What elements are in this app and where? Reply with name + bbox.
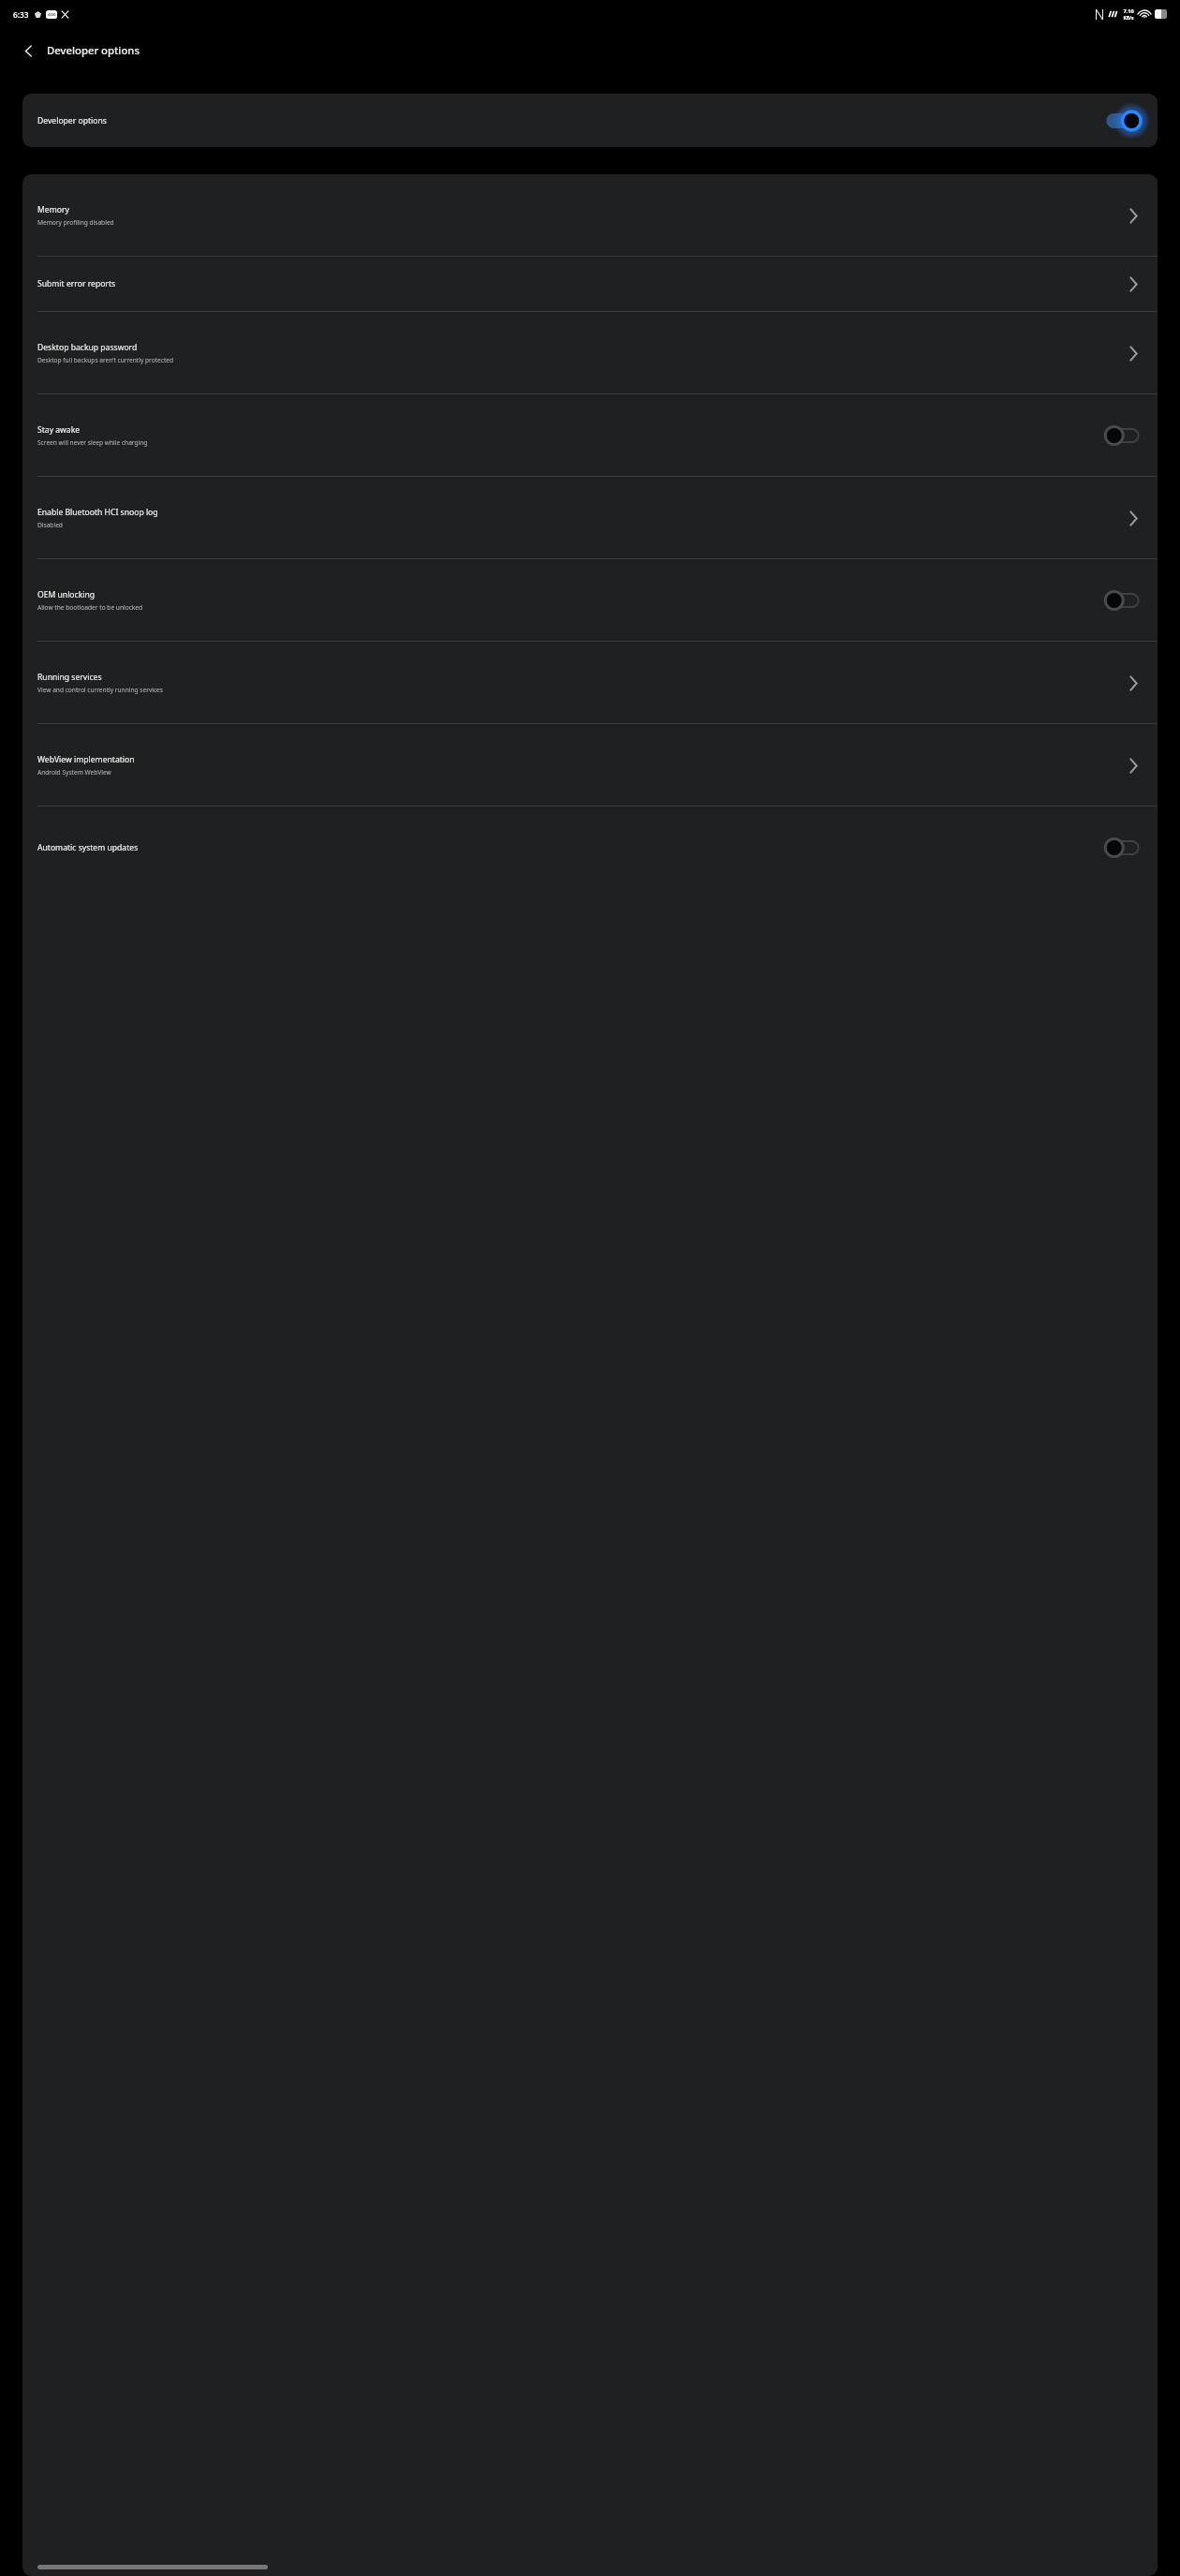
button[interactable]: Back — [13, 36, 43, 66]
staticText: Desktop full backups aren’t currently pr… — [37, 356, 174, 364]
button[interactable]: Running services — [22, 642, 1158, 723]
staticText: OEM unlocking — [37, 589, 96, 600]
staticText: Allow the bootloader to be unlocked — [37, 603, 143, 612]
staticText: Enable Bluetooth HCI snoop log — [37, 507, 158, 518]
button[interactable]: Submit error reports — [22, 257, 1158, 311]
staticText: View and control currently running servi… — [37, 686, 163, 694]
button[interactable]: Developer options — [22, 94, 1158, 147]
staticText: Desktop backup password — [37, 342, 138, 353]
staticText: Memory profiling disabled — [37, 218, 114, 227]
button[interactable]: Stay awake — [22, 394, 1158, 476]
staticText: Developer options — [47, 43, 140, 57]
staticText: KB/s — [1123, 15, 1134, 22]
button[interactable]: Automatic system updates — [22, 807, 1158, 888]
staticText: Memory — [37, 204, 69, 215]
staticText: Developer options — [37, 115, 1102, 126]
button[interactable]: Toggle, off — [1102, 585, 1143, 616]
button[interactable]: Enable Bluetooth HCI snoop log — [22, 477, 1158, 558]
button[interactable]: Desktop backup password — [22, 312, 1158, 393]
staticText: Disabled — [37, 521, 63, 529]
button[interactable]: Toggle, off — [1102, 420, 1143, 452]
button[interactable]: WebView implementation — [22, 724, 1158, 806]
staticText: Stay awake — [37, 424, 81, 436]
button[interactable]: OEM unlocking — [22, 559, 1158, 641]
staticText: 6:33 — [13, 9, 29, 20]
staticText: iQOO — [48, 13, 56, 17]
staticText: Submit error reports — [37, 278, 1115, 289]
staticText: Automatic system updates — [37, 842, 139, 853]
staticText: Android System WebView — [37, 768, 111, 777]
staticText: WebView implementation — [37, 754, 135, 765]
staticText: Running services — [37, 672, 102, 683]
staticText: Screen will never sleep while charging — [37, 438, 148, 447]
button[interactable]: Developer options toggle, on — [1102, 105, 1143, 137]
button[interactable]: Memory — [22, 174, 1158, 256]
button[interactable]: Toggle, off — [1102, 832, 1143, 864]
staticText: 7.10 — [1123, 7, 1134, 15]
